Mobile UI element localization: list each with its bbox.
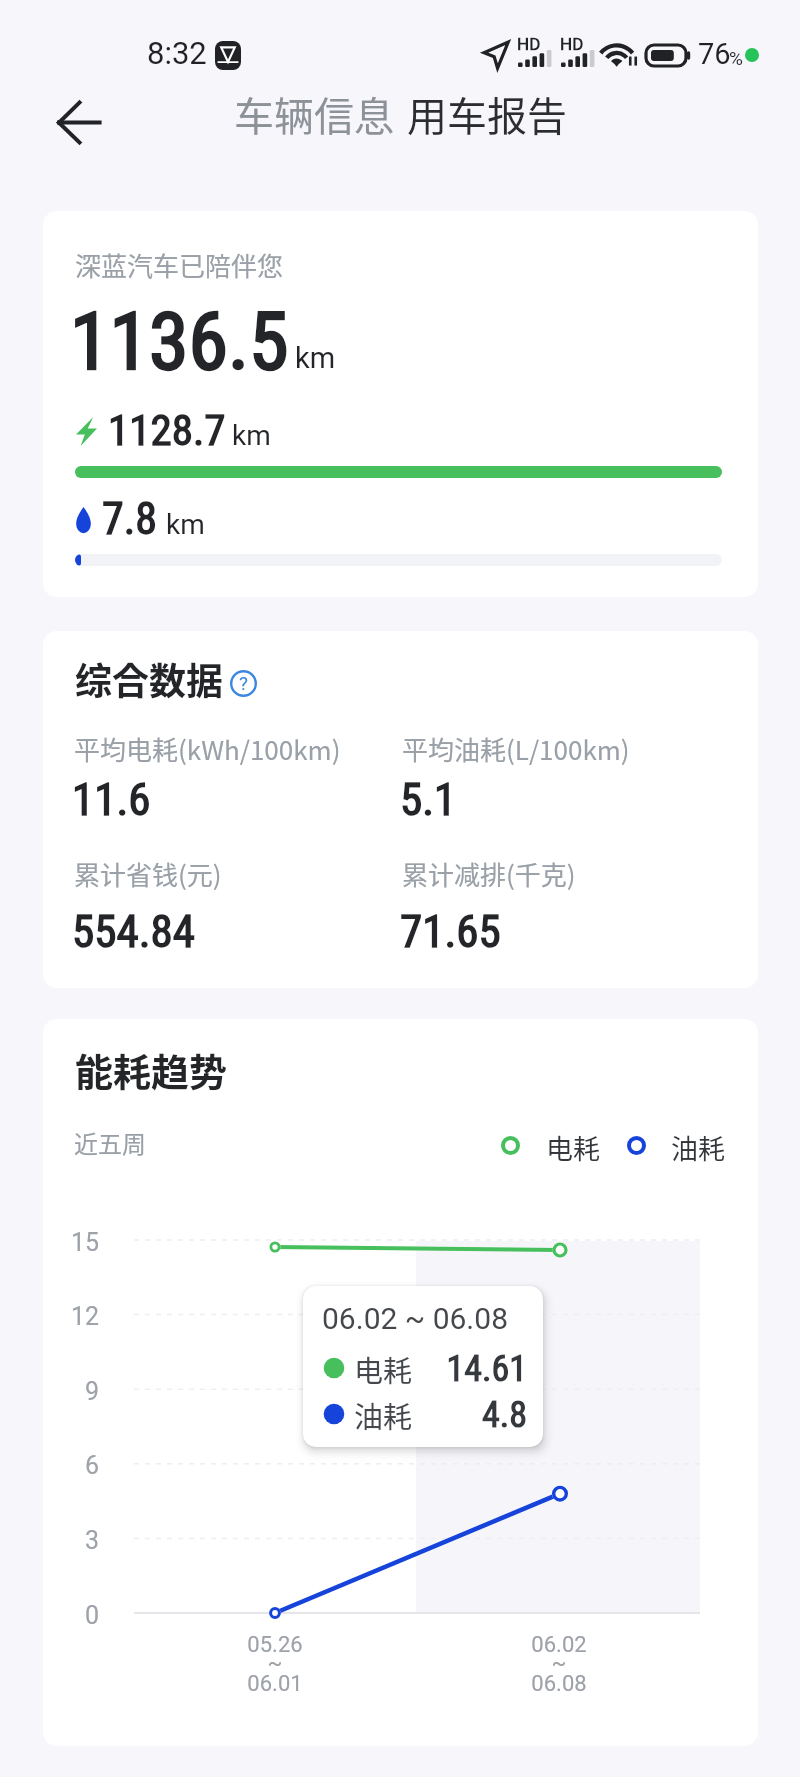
staticText: 06.02 <box>499 1632 619 1658</box>
staticText: 1128.7 <box>108 405 226 455</box>
button[interactable]: 能耗趋势 <box>43 1019 758 1746</box>
button[interactable]: 深蓝汽车已陪伴您 <box>43 211 758 597</box>
staticText: 554.84 <box>72 905 195 958</box>
staticText: 76 <box>698 37 731 71</box>
staticText: % <box>729 47 743 69</box>
staticText: ? <box>239 672 248 694</box>
staticText: 累计减排(千克) <box>402 855 576 893</box>
staticText: 用车报告 <box>407 85 567 143</box>
staticText: ~ <box>215 1650 335 1676</box>
staticText: 能耗趋势 <box>75 1042 228 1097</box>
staticText: 油耗 <box>671 1128 725 1167</box>
staticText: 近五周 <box>74 1125 146 1160</box>
button[interactable]: Back <box>40 88 118 156</box>
staticText: 油耗 <box>354 1394 413 1436</box>
staticText: 05.26 <box>215 1632 335 1658</box>
staticText: 7.8 <box>102 493 158 545</box>
staticText: 4.8 <box>427 1394 527 1436</box>
staticText: 深蓝汽车已陪伴您 <box>75 246 284 284</box>
staticText: 电耗 <box>546 1128 600 1167</box>
staticText: HD <box>560 34 584 54</box>
button[interactable]: Help <box>230 670 257 697</box>
staticText: 06.02 ~ 06.08 <box>322 1301 508 1336</box>
staticText: 平均电耗(kWh/100km) <box>74 730 341 768</box>
staticText: 11.6 <box>72 773 151 826</box>
button[interactable]: 油耗 <box>622 1124 724 1166</box>
button[interactable]: 综合数据 <box>43 631 758 988</box>
staticText: km <box>232 419 271 452</box>
staticText: 5.1 <box>400 773 457 826</box>
staticText: 累计省钱(元) <box>74 855 222 893</box>
staticText: 平均油耗(L/100km) <box>402 730 630 768</box>
staticText: 8:32 <box>147 35 207 71</box>
staticText: 1136.5 <box>70 295 289 389</box>
staticText: 综合数据 <box>75 652 223 706</box>
staticText: km <box>295 341 336 375</box>
staticText: 12 <box>51 1302 99 1331</box>
staticText: 9 <box>51 1377 99 1406</box>
staticText: 14.61 <box>427 1348 527 1390</box>
staticText: 3 <box>51 1526 99 1555</box>
staticText: ~ <box>499 1650 619 1676</box>
staticText: 0 <box>51 1601 99 1630</box>
staticText: 06.08 <box>499 1671 619 1697</box>
staticText: 71.65 <box>400 905 501 958</box>
staticText: km <box>166 508 205 541</box>
staticText: HD <box>517 34 541 54</box>
staticText: 06.01 <box>215 1671 335 1697</box>
staticText: 电耗 <box>354 1348 413 1390</box>
staticText: 车辆信息 <box>234 85 394 143</box>
staticText: 6 <box>51 1451 99 1480</box>
button[interactable]: 电耗 <box>496 1124 598 1166</box>
staticText: 15 <box>51 1228 99 1257</box>
